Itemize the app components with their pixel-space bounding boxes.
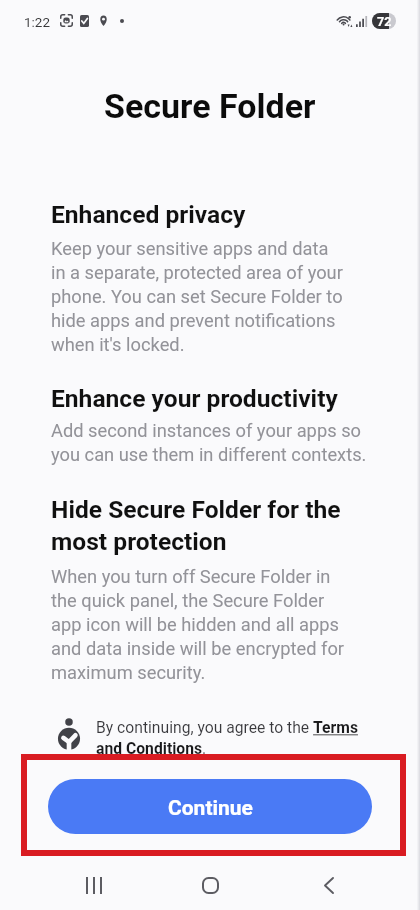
button[interactable]: Continue [48, 779, 372, 834]
button[interactable]: Home [180, 861, 240, 909]
staticText: When you turn off Secure Folder in the q… [51, 564, 345, 684]
staticText: 1:22 [24, 14, 51, 30]
staticText: Enhanced privacy [51, 198, 246, 230]
staticText: Add second instances of your apps so you… [51, 418, 367, 466]
staticText: Continue [168, 796, 253, 821]
button[interactable]: Recent apps [64, 861, 124, 909]
staticText: Hide Secure Folder for the most protecti… [51, 493, 341, 557]
staticText: Keep your sensitive apps and data in a s… [51, 236, 343, 356]
staticText: By continuing, you agree to the Terms an… [96, 717, 362, 759]
staticText: Secure Folder [104, 86, 316, 127]
staticText: Enhance your productivity [51, 382, 338, 414]
button[interactable]: Back [299, 861, 359, 909]
staticText: 72 [377, 14, 392, 29]
